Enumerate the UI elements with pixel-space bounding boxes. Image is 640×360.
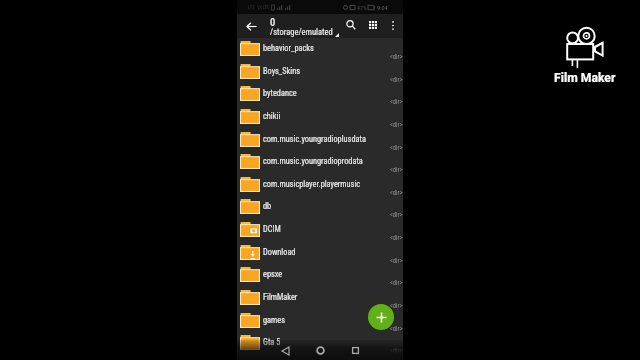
button[interactable]: Boys_Skins	[237, 60, 403, 83]
button[interactable]: db	[237, 195, 403, 218]
button[interactable]: Download	[237, 241, 403, 264]
staticText: <dir>	[390, 166, 403, 174]
button[interactable]: chikii	[237, 105, 403, 128]
staticText: <dir>	[390, 302, 403, 310]
staticText: chikii	[263, 111, 390, 121]
staticText: <dir>	[390, 211, 403, 219]
button[interactable]: Hago	[237, 354, 403, 360]
staticText: DCIM	[263, 224, 390, 234]
button[interactable]: bytedance	[237, 82, 403, 105]
staticText: <dir>	[390, 98, 403, 106]
staticText: <dir>	[390, 189, 403, 197]
staticText: <dir>	[390, 144, 403, 152]
staticText: epsxe	[263, 269, 390, 279]
button[interactable]: epsxe	[237, 263, 403, 286]
staticText: <dir>	[390, 257, 403, 265]
staticText: com.music.youngradioprodata	[263, 156, 390, 166]
staticText: 9:04	[377, 4, 388, 11]
staticText: Download	[263, 247, 390, 257]
button[interactable]: games	[237, 309, 403, 332]
staticText: FilmMaker	[263, 292, 390, 302]
button[interactable]: Gta 5	[237, 331, 403, 354]
staticText: /storage/emulated	[270, 27, 333, 37]
button[interactable]: Grid view	[364, 16, 382, 34]
staticText: bytedance	[263, 88, 390, 98]
staticText: <dir>	[390, 76, 403, 84]
button[interactable]: com.music.youngradioplusdata	[237, 128, 403, 151]
staticText: games	[263, 315, 390, 325]
button[interactable]: Recents	[346, 341, 365, 360]
button[interactable]: behavior_packs	[237, 37, 403, 60]
button[interactable]: More options	[384, 16, 402, 34]
button[interactable]: Search	[342, 16, 360, 34]
staticText: <dir>	[390, 53, 403, 61]
staticText: VoLTE	[257, 4, 270, 10]
button[interactable]: Home	[311, 341, 330, 360]
staticText: com.musicplayer.playermusic	[263, 179, 390, 189]
staticText: <dir>	[390, 347, 403, 355]
staticText: <dir>	[390, 325, 403, 333]
button[interactable]: com.music.youngradioprodata	[237, 150, 403, 173]
button[interactable]: com.musicplayer.playermusic	[237, 173, 403, 196]
staticText: com.music.youngradioplusdata	[263, 134, 390, 144]
staticText: behavior_packs	[263, 43, 390, 53]
staticText: Gta 5	[263, 337, 390, 347]
button[interactable]: Add	[368, 304, 394, 330]
staticText: Boys_Skins	[263, 66, 390, 76]
button[interactable]: DCIM	[237, 218, 403, 241]
staticText: <dir>	[390, 234, 403, 242]
staticText: db	[263, 201, 390, 211]
staticText: <dir>	[390, 279, 403, 287]
staticText: 0	[270, 16, 276, 28]
staticText: <dir>	[390, 121, 403, 129]
staticText: Film Maker	[554, 71, 616, 85]
button[interactable]: Back	[276, 341, 295, 360]
button[interactable]: FilmMaker	[237, 286, 403, 309]
staticText: LTE	[248, 4, 256, 10]
staticText: 47%	[357, 4, 367, 11]
button[interactable]: Back	[242, 17, 260, 35]
